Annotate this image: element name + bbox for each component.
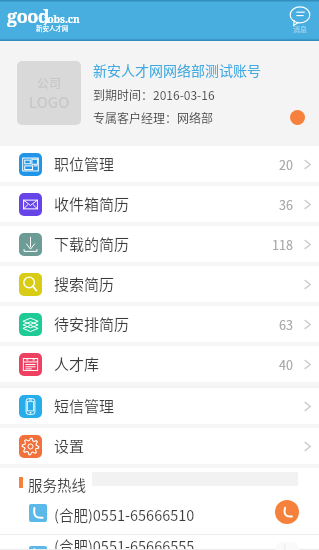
staticText: 短信管理 [54, 395, 115, 417]
button[interactable]: 短信管理 [0, 388, 319, 428]
staticText: 服务热线 [28, 474, 86, 495]
staticText: 职位管理 [54, 153, 115, 175]
button[interactable]: 设置 [0, 428, 319, 468]
staticText: LOGO [29, 91, 70, 113]
staticText: 新安人才网网络部测试账号 [93, 60, 261, 80]
staticText: 36 [279, 195, 293, 213]
staticText: 公司 [37, 74, 62, 91]
staticText: 消息 [293, 24, 307, 34]
staticText: good [7, 4, 50, 29]
button[interactable]: 待安排简历 [0, 306, 319, 346]
staticText: 118 [272, 235, 293, 253]
staticText: (合肥)0551-65666510 [54, 504, 195, 525]
button[interactable]: (合肥)0551-65666510 [0, 493, 319, 535]
button[interactable]: 下载的简历 [0, 226, 319, 266]
staticText: 待安排简历 [54, 313, 130, 335]
staticText: (合肥)0551-65666555 [54, 535, 195, 550]
staticText: 到期时间：2016-03-16 [93, 86, 215, 103]
staticText: jobs.cn [44, 12, 80, 26]
button[interactable]: 拨打 [275, 500, 299, 524]
staticText: 40 [279, 355, 293, 373]
staticText: 人才库 [54, 353, 100, 375]
staticText: 63 [279, 315, 293, 333]
staticText: 搜索简历 [54, 273, 115, 295]
staticText: 下载的简历 [54, 233, 130, 255]
button[interactable]: 职位管理 [0, 146, 319, 186]
staticText: 专属客户经理：网络部 [93, 109, 214, 126]
button[interactable]: (合肥)0551-65666555 [0, 535, 319, 550]
staticText: 20 [279, 155, 293, 173]
staticText: 设置 [54, 435, 85, 457]
staticText: 新安人才网 [36, 23, 69, 32]
button[interactable]: 拨打电话 [290, 110, 305, 125]
button[interactable]: 消息 [286, 3, 314, 37]
button[interactable]: 收件箱简历 [0, 186, 319, 226]
button[interactable]: 人才库 [0, 346, 319, 386]
staticText: 收件箱简历 [54, 193, 130, 215]
button[interactable]: 搜索简历 [0, 266, 319, 306]
